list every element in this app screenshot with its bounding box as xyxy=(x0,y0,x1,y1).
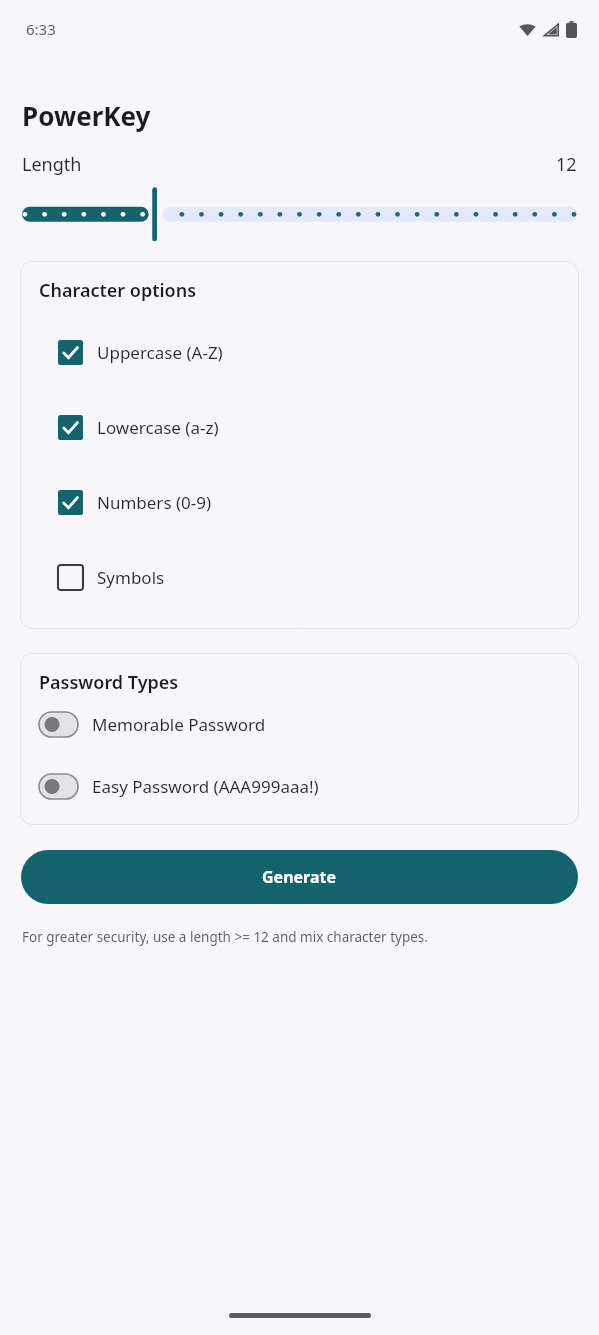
button[interactable]: Easy Password (AAA999aaa!) xyxy=(20,769,579,803)
staticText: 6:33 xyxy=(26,19,56,39)
button[interactable]: Generate xyxy=(21,850,578,904)
staticText: 12 xyxy=(556,152,577,177)
staticText: Memorable Password xyxy=(92,713,266,736)
staticText: Easy Password (AAA999aaa!) xyxy=(92,775,319,798)
staticText: Symbols xyxy=(97,566,165,589)
staticText: For greater security, use a length >= 12… xyxy=(22,928,428,946)
staticText: Numbers (0-9) xyxy=(97,491,212,514)
staticText: Character options xyxy=(39,278,197,303)
staticText: Uppercase (A-Z) xyxy=(97,341,223,364)
staticText: Length xyxy=(22,152,82,177)
button[interactable]: Uppercase (A-Z) xyxy=(20,315,579,390)
staticText: Lowercase (a-z) xyxy=(97,416,219,439)
button[interactable]: Lowercase (a-z) xyxy=(20,390,579,465)
staticText: Generate xyxy=(262,866,337,888)
button[interactable]: Numbers (0-9) xyxy=(20,465,579,540)
staticText: PowerKey xyxy=(22,98,151,133)
button[interactable]: Memorable Password xyxy=(20,707,579,741)
button[interactable]: Symbols xyxy=(20,540,579,615)
staticText: Password Types xyxy=(39,670,179,695)
button[interactable]: Password length slider xyxy=(0,183,599,241)
